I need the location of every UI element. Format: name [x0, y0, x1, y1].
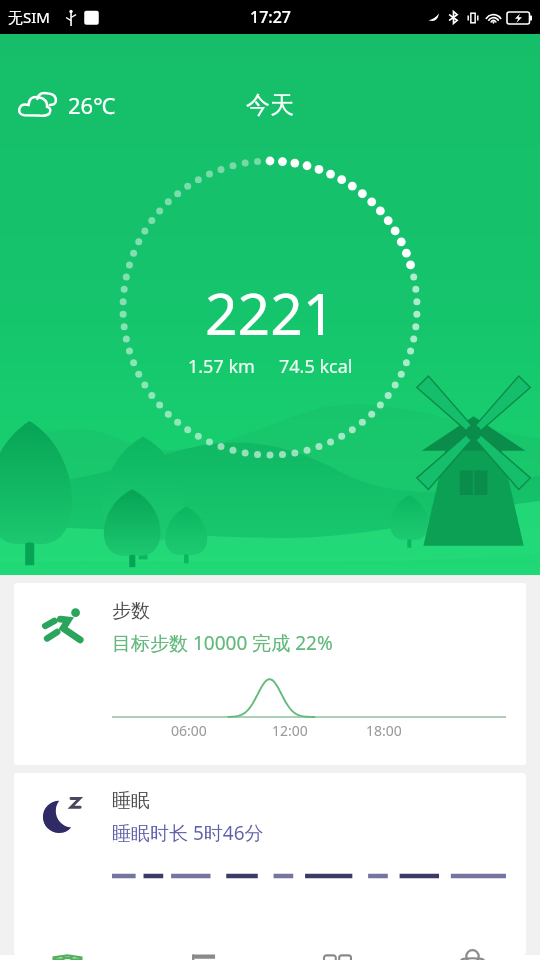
staticText: 1.57 km — [188, 354, 255, 379]
button[interactable]: 睡眠 — [14, 773, 526, 955]
button[interactable]: 设备 — [270, 955, 405, 960]
staticText: 26℃ — [68, 90, 116, 120]
staticText: 步数 — [112, 599, 150, 623]
button[interactable]: 步数 — [14, 583, 526, 765]
staticText: 目标步数 10000 完成 22% — [112, 630, 333, 656]
button[interactable]: Weather 26 degrees — [12, 86, 122, 124]
staticText: 2221 — [205, 274, 336, 352]
staticText: 无SIM — [8, 7, 50, 27]
staticText: 12:00 — [272, 721, 308, 740]
staticText: 18:00 — [366, 721, 402, 740]
button[interactable]: 我的 — [405, 955, 540, 960]
staticText: 74.5 kcal — [279, 354, 353, 379]
staticText: 17:27 — [250, 6, 291, 28]
button[interactable]: 今天 — [0, 955, 135, 960]
staticText: 睡眠时长 5时46分 — [112, 820, 264, 846]
staticText: 睡眠 — [112, 789, 150, 813]
staticText: 06:00 — [171, 721, 207, 740]
button[interactable]: 运动 — [135, 955, 270, 960]
staticText: 今天 — [246, 90, 294, 120]
